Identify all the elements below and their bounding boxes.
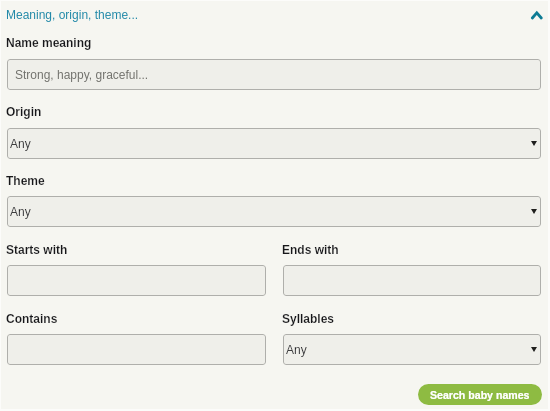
button[interactable]: Search baby names	[418, 384, 542, 405]
button[interactable]: Collapse section	[524, 3, 548, 27]
staticText: Syllables	[282, 312, 335, 325]
staticText: Any	[10, 205, 31, 218]
staticText: Any	[286, 343, 307, 356]
button[interactable]	[7, 334, 266, 365]
staticText: Strong, happy, graceful...	[15, 68, 149, 81]
staticText: Search baby names	[430, 389, 530, 401]
button[interactable]: Any	[7, 128, 541, 159]
button[interactable]	[283, 265, 541, 296]
button[interactable]: Any	[7, 196, 541, 227]
button[interactable]: Meaning, origin, theme...	[0, 0, 548, 30]
staticText: Starts with	[6, 243, 68, 256]
staticText: Origin	[6, 105, 42, 118]
staticText: Any	[10, 137, 31, 150]
staticText: Contains	[6, 312, 58, 325]
staticText: Ends with	[282, 243, 339, 256]
button[interactable]: Any	[283, 334, 541, 365]
staticText: Theme	[6, 174, 45, 187]
staticText: Name meaning	[6, 36, 92, 49]
button[interactable]: Strong, happy, graceful...	[7, 59, 541, 90]
button[interactable]	[7, 265, 266, 296]
staticText: Meaning, origin, theme...	[6, 8, 139, 21]
